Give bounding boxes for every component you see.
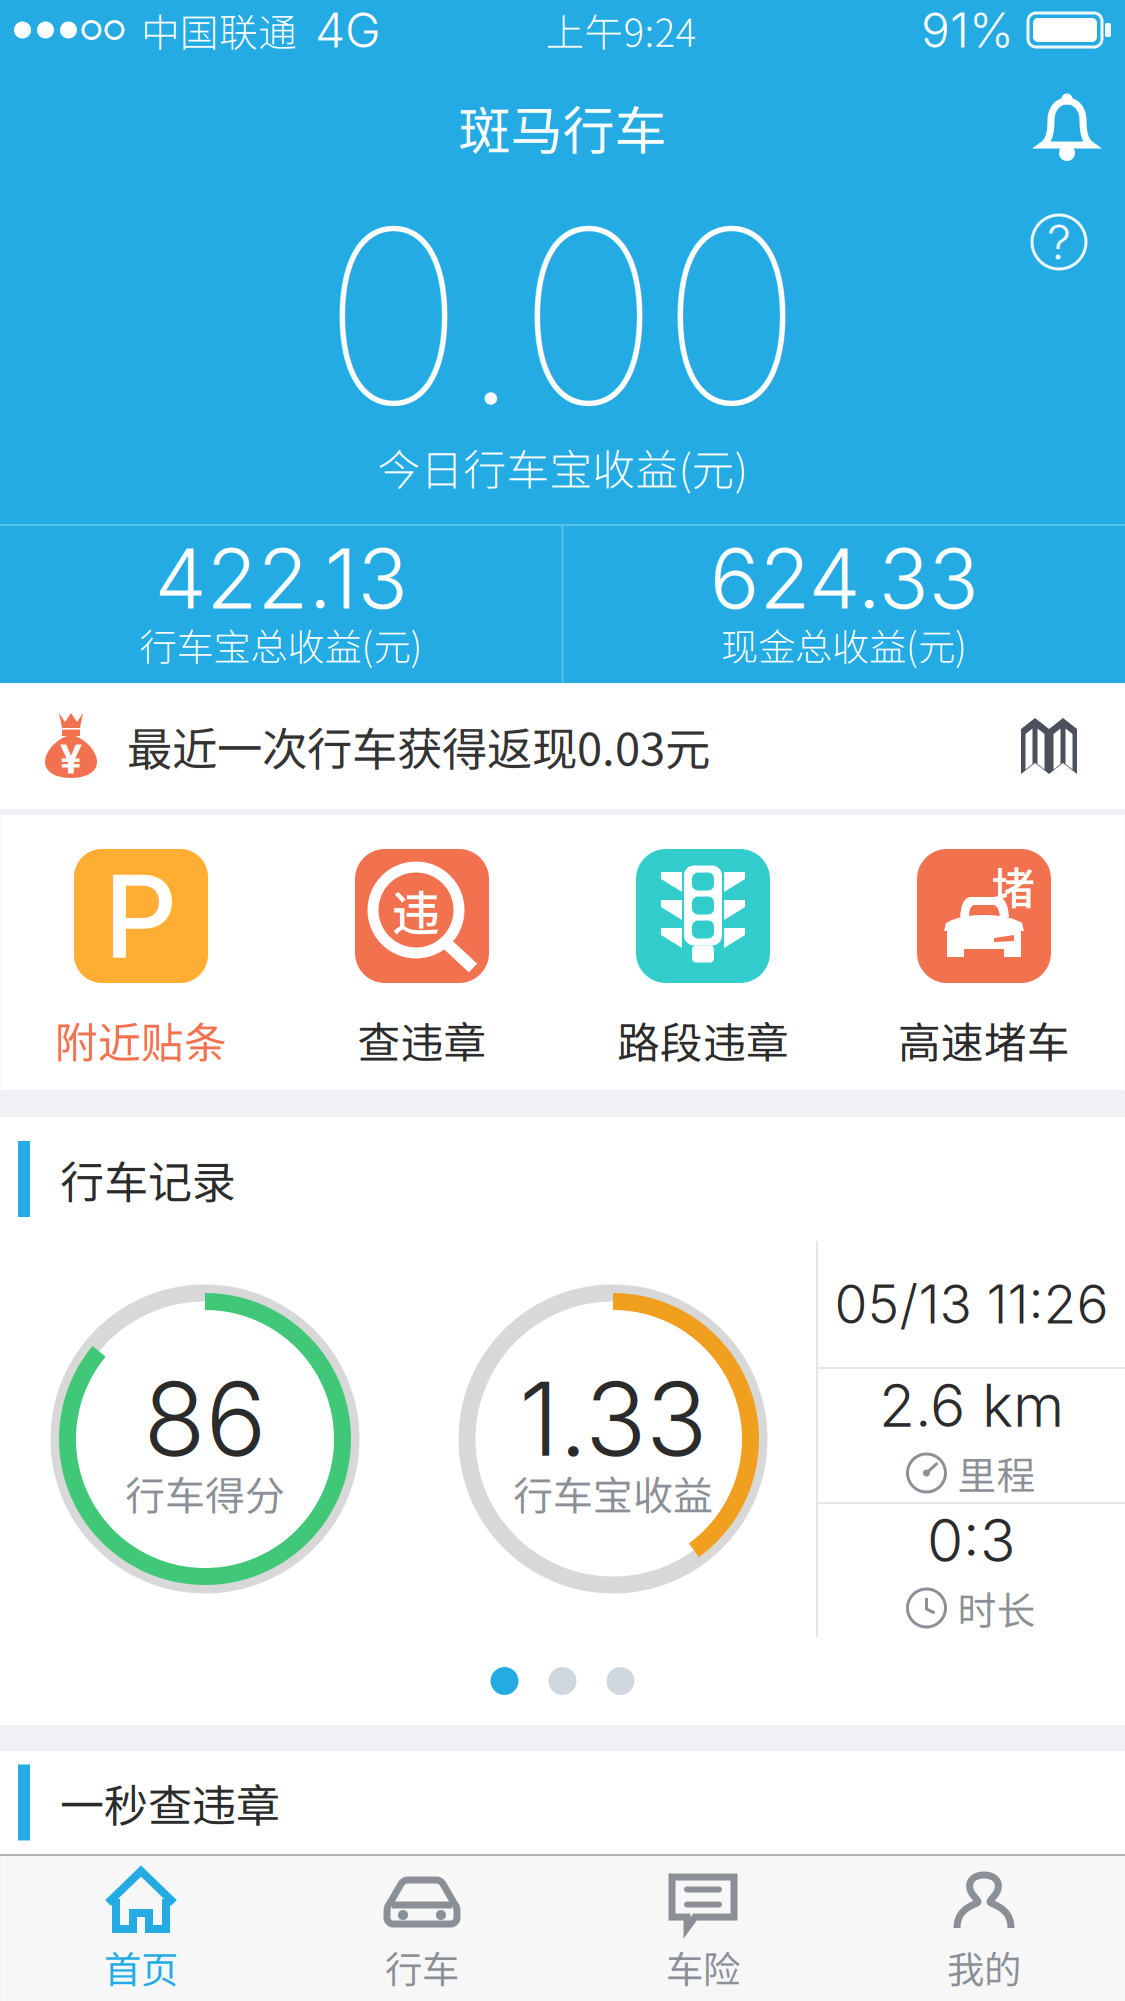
staticText: 最近一次行车获得返现0.03元 bbox=[127, 713, 710, 779]
button[interactable]: 违 bbox=[281, 815, 562, 1090]
staticText: 斑马行车 bbox=[458, 89, 666, 165]
staticText: 行车宝总收益(元) bbox=[139, 617, 422, 672]
staticText: 现金总收益(元) bbox=[721, 617, 967, 672]
staticText: 1.33 bbox=[519, 1358, 707, 1480]
staticText: 高速堵车 bbox=[898, 1009, 1070, 1071]
staticText: ¥ bbox=[60, 735, 82, 783]
staticText: 行车 bbox=[385, 1940, 459, 1994]
staticText: 422.13 bbox=[154, 528, 407, 628]
staticText: 中国联通 bbox=[141, 2, 297, 58]
staticText: 时长 bbox=[957, 1580, 1035, 1636]
staticText: 0.00 bbox=[322, 170, 803, 462]
button[interactable]: 通知 bbox=[1009, 60, 1125, 194]
staticText: 上午9:24 bbox=[545, 2, 696, 58]
staticText: P bbox=[104, 847, 178, 985]
button[interactable]: 624.33 bbox=[563, 526, 1124, 683]
staticText: 我的 bbox=[947, 1940, 1021, 1994]
staticText: 624.33 bbox=[709, 528, 978, 628]
staticText: 91% bbox=[921, 1, 1014, 59]
staticText: 今日行车宝收益(元) bbox=[377, 436, 747, 498]
button[interactable]: 帮助 bbox=[1011, 194, 1107, 290]
staticText: 0:3 bbox=[927, 1505, 1016, 1576]
button[interactable]: ¥ bbox=[0, 683, 1125, 809]
staticText: 86 bbox=[143, 1358, 266, 1480]
staticText: 4G bbox=[315, 1, 381, 59]
staticText: 附近贴条 bbox=[55, 1009, 227, 1071]
staticText: 05/13 11:26 bbox=[834, 1272, 1108, 1336]
staticText: 车险 bbox=[666, 1940, 740, 1994]
staticText: 查违章 bbox=[357, 1009, 486, 1071]
staticText: 2.6 km bbox=[879, 1370, 1064, 1441]
button[interactable]: 堵 bbox=[843, 815, 1124, 1090]
button[interactable]: P bbox=[0, 815, 281, 1090]
button[interactable]: 行车 bbox=[281, 1856, 562, 2001]
staticText: 一秒查违章 bbox=[60, 1771, 280, 1834]
staticText: 行车得分 bbox=[125, 1464, 285, 1522]
button[interactable]: 我的 bbox=[843, 1856, 1124, 2001]
button[interactable]: 车险 bbox=[562, 1856, 843, 2001]
button[interactable]: 422.13 bbox=[0, 526, 561, 683]
staticText: 里程 bbox=[957, 1445, 1035, 1501]
staticText: 堵 bbox=[991, 853, 1035, 917]
staticText: ? bbox=[1047, 213, 1071, 271]
staticText: 首页 bbox=[104, 1940, 178, 1994]
button[interactable]: 路段违章 bbox=[562, 815, 843, 1090]
staticText: 行车记录 bbox=[60, 1147, 236, 1211]
staticText: 路段违章 bbox=[617, 1009, 789, 1071]
button[interactable]: 首页 bbox=[0, 1856, 281, 2001]
staticText: 违 bbox=[392, 875, 440, 945]
staticText: 行车宝收益 bbox=[513, 1464, 713, 1522]
